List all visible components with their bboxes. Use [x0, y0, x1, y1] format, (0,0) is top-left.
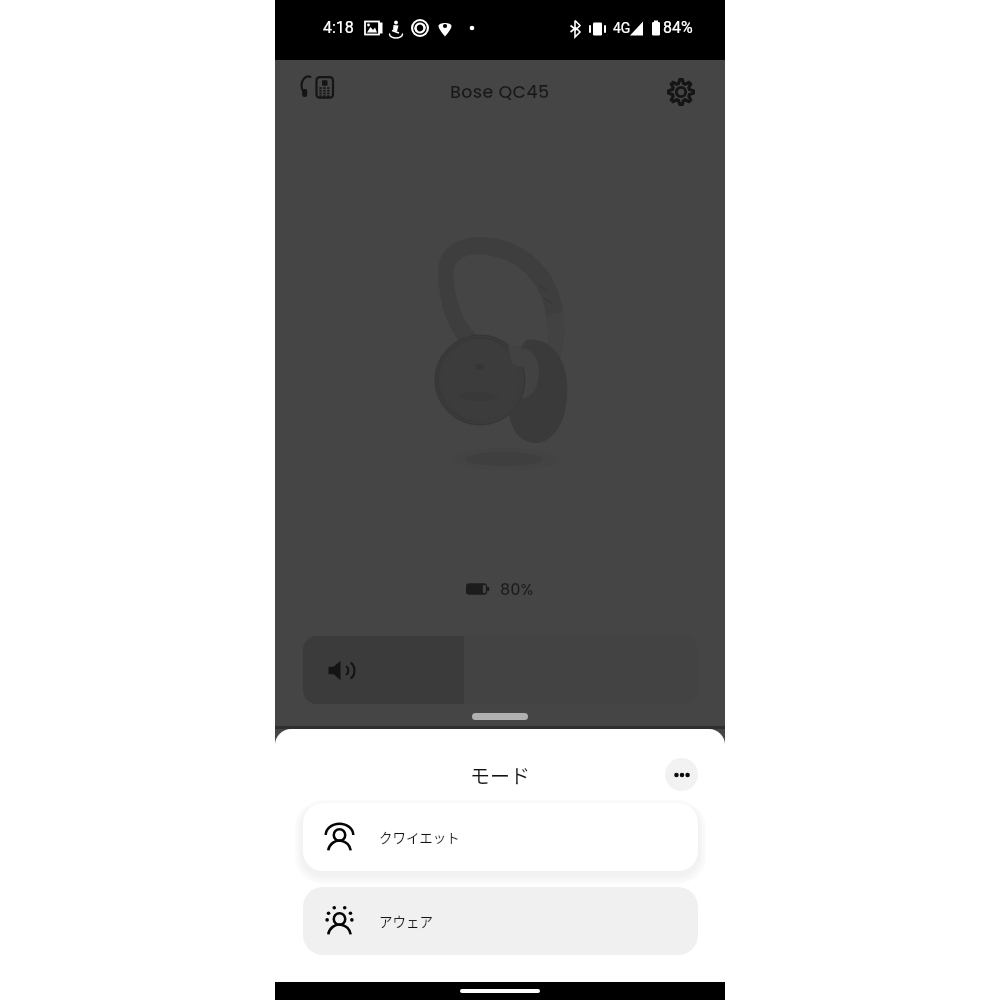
staticText: 84%: [663, 18, 693, 37]
button[interactable]: クワイエット: [303, 803, 698, 871]
staticText: クワイエット: [379, 827, 460, 847]
button[interactable]: Connected devices: [295, 65, 339, 109]
staticText: 4G: [613, 20, 631, 36]
staticText: 80%: [500, 578, 534, 600]
button[interactable]: Settings: [659, 70, 703, 114]
button[interactable]: アウェア: [303, 887, 698, 955]
staticText: Bose QC45: [450, 80, 550, 105]
staticText: 4:18: [323, 18, 354, 37]
staticText: アウェア: [379, 911, 433, 931]
button[interactable]: More options: [665, 758, 698, 791]
button[interactable]: Volume: [303, 636, 698, 704]
staticText: モード: [470, 761, 530, 790]
